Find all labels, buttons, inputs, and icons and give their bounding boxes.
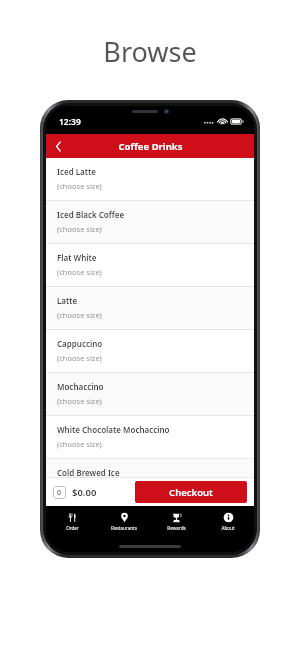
staticText: Browse bbox=[103, 33, 197, 70]
staticText: Latte bbox=[57, 295, 78, 306]
staticText: (choose size) bbox=[57, 267, 102, 277]
button[interactable]: Flat White bbox=[46, 244, 254, 287]
button[interactable]: Cold Brewed Ice bbox=[46, 459, 254, 478]
staticText: (choose size) bbox=[57, 353, 102, 363]
staticText: 12:39 bbox=[59, 116, 81, 128]
staticText: Cold Brewed Ice bbox=[57, 467, 120, 477]
staticText: (choose size) bbox=[57, 396, 102, 406]
staticText: Iced Black Coffee bbox=[57, 209, 125, 220]
staticText: Cappuccino bbox=[57, 338, 103, 349]
staticText: About bbox=[221, 525, 235, 531]
button[interactable]: Checkout bbox=[135, 481, 247, 503]
staticText: Mochaccino bbox=[57, 381, 104, 392]
staticText: 0 bbox=[57, 488, 62, 498]
staticText: Iced Latte bbox=[57, 166, 96, 177]
staticText: (choose size) bbox=[57, 439, 102, 449]
button[interactable]: 0 bbox=[53, 486, 66, 499]
button[interactable]: About bbox=[202, 510, 254, 533]
button[interactable]: Rewards bbox=[150, 510, 202, 533]
staticText: Checkout bbox=[169, 486, 213, 499]
button[interactable]: Back bbox=[46, 134, 70, 158]
staticText: Order bbox=[66, 525, 79, 531]
staticText: (choose size) bbox=[57, 224, 102, 234]
button[interactable]: Cappuccino bbox=[46, 330, 254, 373]
staticText: Flat White bbox=[57, 252, 97, 263]
staticText: Restaurants bbox=[111, 525, 137, 531]
staticText: Coffee Drinks bbox=[118, 140, 183, 153]
staticText: White Chocolate Mochaccino bbox=[57, 424, 170, 435]
button[interactable]: Order bbox=[46, 510, 98, 533]
staticText: (choose size) bbox=[57, 310, 102, 320]
button[interactable]: Iced Latte bbox=[46, 158, 254, 201]
button[interactable]: Iced Black Coffee bbox=[46, 201, 254, 244]
button[interactable]: Mochaccino bbox=[46, 373, 254, 416]
button[interactable]: Restaurants bbox=[98, 510, 150, 533]
staticText: (choose size) bbox=[57, 181, 102, 191]
button[interactable]: White Chocolate Mochaccino bbox=[46, 416, 254, 459]
staticText: Rewards bbox=[167, 525, 186, 531]
staticText: $0.00 bbox=[72, 486, 97, 499]
button[interactable]: Latte bbox=[46, 287, 254, 330]
